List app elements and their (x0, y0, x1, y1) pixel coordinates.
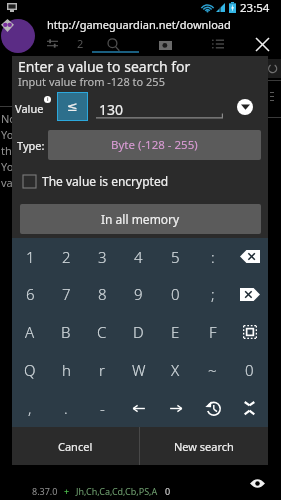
staticText: A (25, 322, 35, 342)
button[interactable]: Close (249, 31, 275, 57)
other: Select all (243, 325, 257, 339)
button[interactable]: Menu (205, 31, 231, 57)
button[interactable]: , (12, 389, 48, 427)
button[interactable]: Choose value (237, 99, 253, 115)
staticText: No (1, 111, 17, 126)
staticText: r (99, 360, 105, 380)
staticText: . (64, 398, 68, 418)
staticText: 0 (165, 485, 171, 497)
button[interactable]: 1 (12, 238, 48, 275)
button[interactable]: Q (12, 351, 48, 389)
staticText: Value (15, 101, 44, 116)
staticText: Cancel (58, 439, 93, 454)
button[interactable]: 5 (157, 238, 194, 275)
staticText: h (62, 360, 71, 380)
button[interactable]: ≤ (57, 92, 88, 121)
button[interactable]: F (194, 313, 231, 351)
button[interactable]: X (157, 351, 194, 389)
staticText: Yo (1, 127, 14, 142)
button[interactable]: Select all (231, 313, 268, 351)
button[interactable]: 9 (120, 275, 157, 313)
staticText: Input value from -128 to 255 (18, 74, 165, 89)
staticText: th (1, 143, 12, 158)
staticText: 8.37.0 (32, 485, 58, 497)
staticText: - (100, 398, 105, 418)
other: Toggle keyboard (243, 401, 256, 415)
button[interactable]: h (48, 351, 84, 389)
button[interactable]: W (120, 351, 157, 389)
button[interactable]: ~ (194, 351, 231, 389)
staticText: , (28, 398, 32, 418)
staticText: 7 (62, 284, 71, 304)
staticText: 2 (62, 247, 71, 267)
staticText: 130 (99, 100, 124, 119)
staticText: D (133, 322, 144, 342)
button[interactable]: 6 (12, 275, 48, 313)
button[interactable]: : (194, 238, 231, 275)
button[interactable]: New search (140, 427, 268, 465)
button[interactable]: Show (245, 473, 269, 493)
button[interactable]: E (157, 313, 194, 351)
staticText: : (211, 247, 215, 267)
button[interactable]: A (12, 313, 48, 351)
staticText: Byte (-128 - 255) (111, 137, 198, 153)
button[interactable]: Toggle keyboard (231, 389, 268, 427)
staticText: B (61, 322, 71, 342)
staticText: Jh,Ch,Ca,Cd,Cb,PS,A (76, 485, 158, 497)
staticText: C (97, 322, 107, 342)
staticText: Yo (1, 159, 14, 174)
button[interactable]: 4 (120, 238, 157, 275)
button[interactable]: Left (120, 389, 157, 427)
button[interactable]: 0 (231, 351, 268, 389)
button[interactable]: 7 (48, 275, 84, 313)
staticText: 4 (134, 247, 143, 267)
staticText: ; (211, 284, 215, 304)
button[interactable]: D (120, 313, 157, 351)
staticText: 0 (245, 360, 254, 380)
staticText: 2 (77, 36, 84, 51)
button[interactable]: Delete (231, 275, 268, 313)
staticText: + (64, 485, 70, 497)
button[interactable]: - (84, 389, 120, 427)
button[interactable]: Right (157, 389, 194, 427)
button[interactable]: C (84, 313, 120, 351)
button[interactable]: 2 (48, 238, 84, 275)
staticText: W (132, 360, 146, 380)
other: Right (169, 403, 183, 414)
button[interactable]: Backspace (231, 238, 268, 275)
button[interactable]: The value is encrypted (20, 168, 205, 194)
other: Delete (240, 288, 260, 301)
other: History (205, 400, 221, 416)
staticText: 3 (98, 247, 107, 267)
other: Left (132, 403, 146, 414)
staticText: E (171, 322, 180, 342)
staticText: Type: (17, 138, 45, 153)
button[interactable]: In all memory (20, 204, 261, 234)
staticText: 9 (134, 284, 143, 304)
button[interactable]: B (48, 313, 84, 351)
button[interactable]: Bookmarks (152, 31, 178, 57)
staticText: va (1, 175, 13, 190)
staticText: 1 (26, 247, 35, 267)
staticText: i (47, 96, 49, 103)
button[interactable]: Search (100, 31, 126, 57)
button[interactable]: r (84, 351, 120, 389)
staticText: ≤ (67, 99, 78, 114)
staticText: The value is encrypted (42, 173, 169, 189)
staticText: http://gameguardian.net/download (47, 17, 231, 32)
staticText: New search (174, 439, 234, 454)
button[interactable]: 8 (84, 275, 120, 313)
staticText: 6 (26, 284, 35, 304)
button[interactable]: 0 (157, 275, 194, 313)
button[interactable]: ; (194, 275, 231, 313)
staticText: 5 (171, 247, 180, 267)
button[interactable]: Cancel (12, 427, 139, 465)
staticText: X (171, 360, 180, 380)
staticText: F (209, 322, 217, 342)
button[interactable]: History (194, 389, 231, 427)
button[interactable]: 3 (84, 238, 120, 275)
staticText: 23:54 (240, 0, 270, 15)
button[interactable]: Byte (-128 - 255) (48, 130, 261, 160)
other: Backspace (240, 250, 260, 263)
button[interactable]: . (48, 389, 84, 427)
